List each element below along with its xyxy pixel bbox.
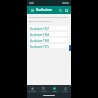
staticText: Kuis (53, 90, 57, 92)
staticText: Kurikulum 1964 (30, 33, 66, 36)
button[interactable]: Search (57, 7, 63, 13)
staticText: serta penerapannya (29, 20, 51, 23)
button[interactable]: Kuis (49, 85, 60, 93)
staticText: Materi (41, 90, 47, 92)
staticText: Kurikulum 1947 (30, 27, 66, 30)
button[interactable]: Kurikulum 1947 (29, 26, 69, 30)
button[interactable]: Open navigation menu (29, 7, 35, 13)
staticText: Kurikulum 1968 (30, 39, 66, 42)
staticText: Perkembangan kurikulum dari masa ke masa (29, 16, 69, 19)
button[interactable]: Profil (60, 85, 71, 93)
staticText: Profil (63, 90, 68, 92)
button[interactable]: Kurikulum 1975 (29, 44, 69, 48)
staticText: Beranda (29, 90, 37, 92)
button[interactable]: Kurikulum 1968 (29, 38, 69, 42)
button[interactable]: Beranda (27, 85, 38, 93)
button[interactable]: Materi (38, 85, 49, 93)
button[interactable]: More options (63, 7, 69, 13)
button[interactable]: Side panel handle (69, 45, 71, 51)
staticText: Kurikulum (36, 8, 57, 12)
button[interactable]: Kurikulum 1964 (29, 32, 69, 36)
staticText: Kurikulum 1975 (30, 45, 66, 48)
